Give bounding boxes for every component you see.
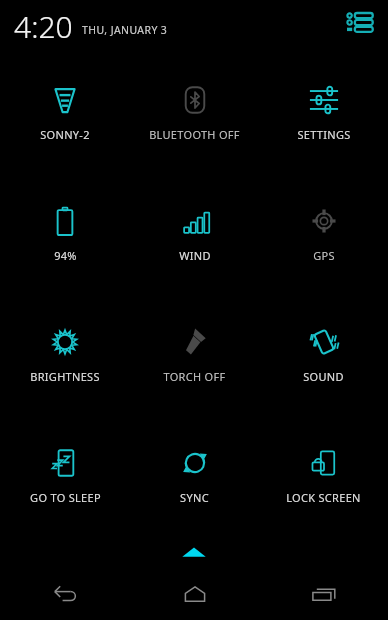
button[interactable]: SOUND xyxy=(259,294,388,415)
button[interactable]: TORCH OFF xyxy=(130,294,259,415)
staticText: LOCK SCREEN xyxy=(286,490,361,505)
button[interactable]: BRIGHTNESS xyxy=(0,294,130,415)
button[interactable]: Home xyxy=(130,568,259,620)
button[interactable]: SONNY-2 xyxy=(0,52,130,173)
staticText: BLUETOOTH OFF xyxy=(149,127,240,142)
staticText: WIND xyxy=(179,248,211,263)
button[interactable]: Collapse panel xyxy=(0,536,388,568)
staticText: SONNY-2 xyxy=(40,127,90,142)
staticText: GPS xyxy=(313,248,335,263)
staticText: BRIGHTNESS xyxy=(30,369,100,384)
button[interactable]: WIND xyxy=(130,173,259,294)
staticText: THU, JANUARY 3 xyxy=(82,23,168,37)
staticText: TORCH OFF xyxy=(163,369,226,384)
button[interactable]: BLUETOOTH OFF xyxy=(130,52,259,173)
staticText: GO TO SLEEP xyxy=(30,490,101,505)
staticText: SETTINGS xyxy=(297,127,351,142)
button[interactable]: 94% xyxy=(0,173,130,294)
staticText: 94% xyxy=(54,248,77,263)
button[interactable]: GPS xyxy=(259,173,388,294)
button[interactable]: Back xyxy=(0,568,130,620)
button[interactable]: Settings list xyxy=(338,4,382,48)
button[interactable]: SETTINGS xyxy=(259,52,388,173)
staticText: SYNC xyxy=(180,490,209,505)
staticText: SOUND xyxy=(303,369,344,384)
button[interactable]: LOCK SCREEN xyxy=(259,415,388,536)
button[interactable]: Recents xyxy=(259,568,388,620)
button[interactable]: GO TO SLEEP xyxy=(0,415,130,536)
button[interactable]: SYNC xyxy=(130,415,259,536)
staticText: 4:20 xyxy=(14,6,73,47)
